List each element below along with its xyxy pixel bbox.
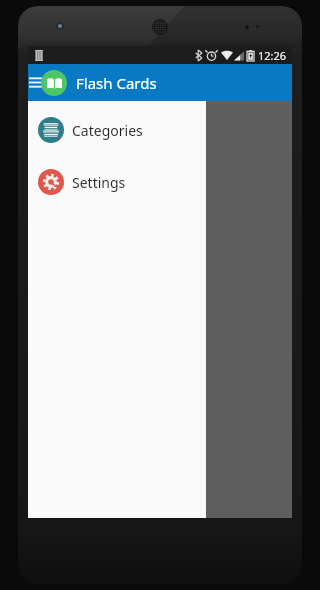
staticText: Settings — [72, 173, 126, 192]
staticText: 12:26 — [258, 48, 287, 63]
staticText: Flash Cards — [76, 73, 157, 93]
button[interactable]: Open navigation drawer — [24, 64, 46, 101]
staticText: Categories — [72, 121, 143, 140]
button[interactable]: Settings — [28, 163, 206, 201]
button[interactable]: Flash Cards — [41, 70, 157, 96]
button[interactable]: Categories — [28, 111, 206, 149]
